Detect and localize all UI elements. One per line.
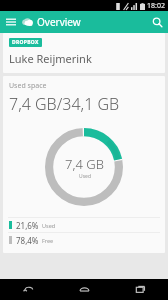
- staticText: Free: [42, 237, 54, 244]
- staticText: 7,4 GB: [65, 155, 104, 173]
- button[interactable]: Recent apps: [112, 279, 168, 300]
- button[interactable]: 78,4%: [3, 233, 165, 247]
- button[interactable]: Back: [0, 279, 56, 300]
- staticText: Used: [79, 173, 91, 180]
- staticText: Used space: [9, 81, 47, 91]
- button[interactable]: Home: [56, 279, 112, 300]
- staticText: DROPBOX: [12, 39, 39, 46]
- staticText: 18:02: [147, 1, 165, 11]
- button[interactable]: DROPBOX: [3, 33, 165, 73]
- staticText: 78,4%: [16, 235, 39, 246]
- button[interactable]: Open navigation drawer: [3, 14, 19, 30]
- button[interactable]: Search: [146, 11, 168, 33]
- button[interactable]: 21,6%: [3, 218, 165, 232]
- staticText: Used: [42, 222, 56, 229]
- staticText: 7,4 GB/34,1 GB: [9, 93, 120, 115]
- staticText: Overview: [37, 15, 81, 29]
- staticText: 21,6%: [16, 220, 39, 231]
- staticText: Luke Reijmerink: [9, 51, 92, 66]
